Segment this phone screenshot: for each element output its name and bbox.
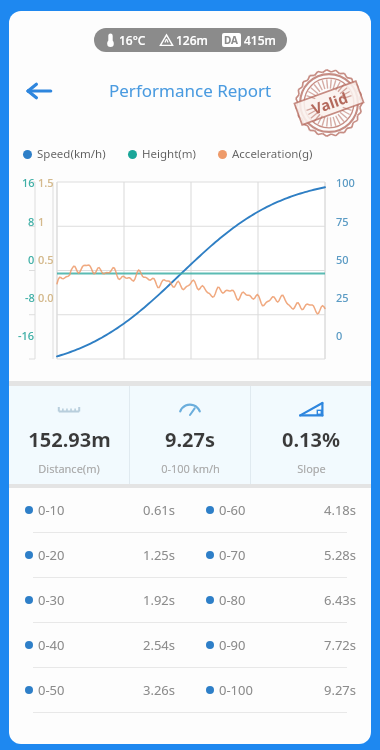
button[interactable]: 0-20 — [9, 533, 371, 577]
button[interactable]: Acceleration(g) — [218, 146, 313, 162]
staticText: 1.5 — [38, 175, 54, 190]
button[interactable]: 9.27s — [130, 386, 250, 484]
button[interactable]: Speed(km/h) — [23, 146, 106, 162]
staticText: 0.0 — [38, 290, 54, 305]
staticText: 0-90 — [219, 636, 246, 654]
button[interactable]: 0-50 — [9, 668, 371, 712]
staticText: Slope — [297, 461, 326, 476]
staticText: Distance(m) — [38, 461, 100, 476]
button[interactable]: Valid stamp — [291, 65, 367, 141]
staticText: 0-60 — [219, 501, 246, 519]
button[interactable]: 16°C — [94, 28, 287, 52]
staticText: 50 — [336, 252, 349, 267]
staticText: 0-10 — [38, 501, 65, 519]
staticText: 100 — [336, 175, 355, 190]
staticText: 1 — [38, 214, 45, 229]
staticText: Height(m) — [142, 146, 196, 162]
staticText: 0-40 — [38, 636, 65, 654]
staticText: 0-30 — [38, 591, 65, 609]
button[interactable]: Height(m) — [128, 146, 196, 162]
staticText: Acceleration(g) — [232, 146, 313, 162]
button[interactable]: Back — [17, 69, 61, 113]
staticText: 4.18s — [324, 501, 357, 519]
staticText: 0-20 — [38, 546, 65, 564]
staticText: 1.92s — [143, 591, 176, 609]
staticText: 1.25s — [143, 546, 176, 564]
button[interactable]: 0.13% — [251, 386, 371, 484]
staticText: -8 — [25, 290, 35, 305]
staticText: 9.27s — [165, 426, 215, 453]
staticText: 0-80 — [219, 591, 246, 609]
staticText: 2.54s — [143, 636, 176, 654]
staticText: 9.27s — [324, 681, 357, 699]
button[interactable]: 0-40 — [9, 623, 371, 667]
staticText: -16 — [18, 328, 35, 343]
staticText: 0-100 km/h — [161, 461, 220, 476]
staticText: 16°C — [119, 32, 146, 48]
button[interactable]: 0-30 — [9, 578, 371, 622]
staticText: Performance Report — [109, 79, 272, 102]
staticText: Speed(km/h) — [37, 146, 106, 162]
staticText: 3.26s — [143, 681, 176, 699]
staticText: 0.61s — [143, 501, 176, 519]
staticText: 0-70 — [219, 546, 246, 564]
staticText: Valid — [309, 87, 350, 119]
button[interactable]: 0-10 — [9, 488, 371, 532]
staticText: 415m — [244, 32, 276, 48]
staticText: 0.13% — [282, 426, 340, 453]
staticText: 25 — [336, 290, 349, 305]
button[interactable]: 152.93m — [9, 386, 129, 484]
staticText: 16 — [22, 175, 35, 190]
staticText: 7.72s — [324, 636, 357, 654]
staticText: 0.5 — [38, 252, 54, 267]
staticText: 5.28s — [324, 546, 357, 564]
staticText: 0 — [28, 252, 35, 267]
staticText: 0-100 — [219, 681, 253, 699]
staticText: 75 — [336, 214, 349, 229]
staticText: 8 — [28, 214, 35, 229]
staticText: 152.93m — [28, 426, 111, 453]
staticText: DA — [224, 33, 239, 47]
staticText: 0-50 — [38, 681, 65, 699]
staticText: 126m — [176, 32, 208, 48]
staticText: 6.43s — [324, 591, 357, 609]
staticText: 0 — [336, 328, 343, 343]
